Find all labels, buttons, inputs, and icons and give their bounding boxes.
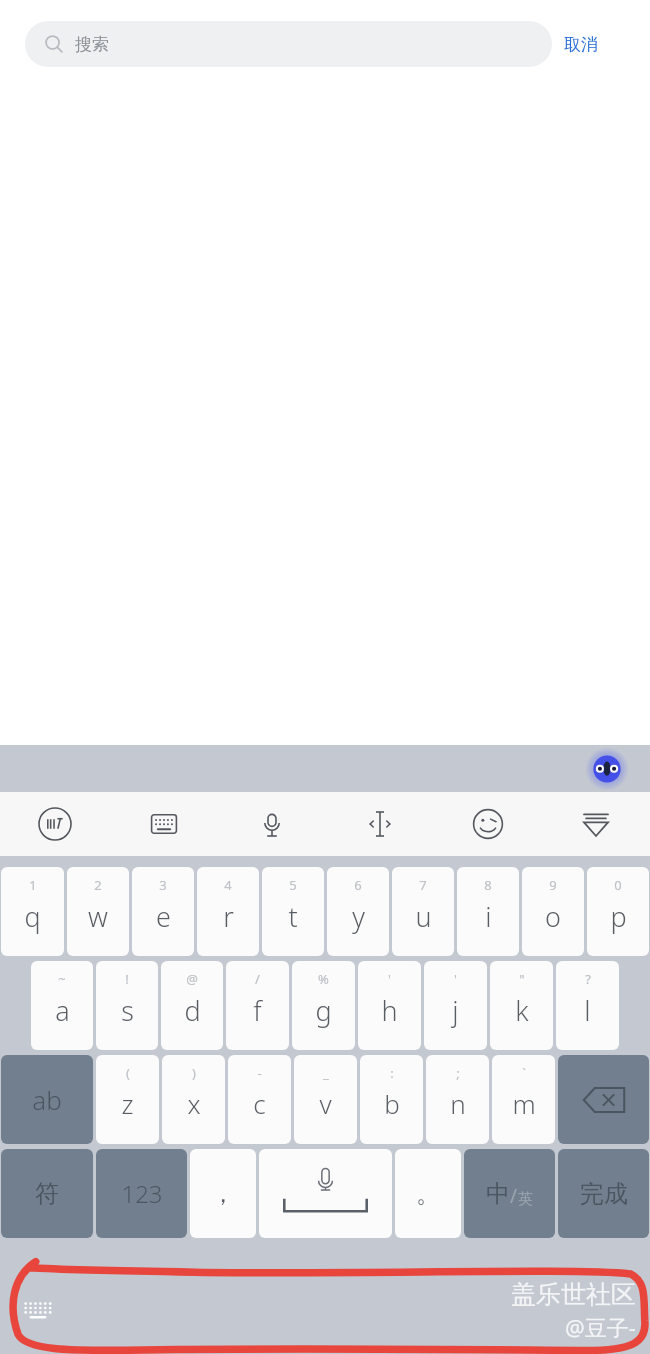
button[interactable]: ? bbox=[556, 961, 619, 1050]
button[interactable]: ' bbox=[424, 961, 487, 1050]
button[interactable]: ' bbox=[358, 961, 421, 1050]
button[interactable]: 6 bbox=[327, 867, 389, 956]
button[interactable]: @ bbox=[161, 961, 223, 1050]
staticText: c bbox=[253, 1086, 266, 1121]
button[interactable]: ab bbox=[1, 1055, 93, 1144]
staticText: ab bbox=[32, 1082, 62, 1117]
staticText: ， bbox=[211, 1179, 235, 1209]
staticText: / bbox=[510, 1183, 518, 1209]
staticText: / bbox=[255, 970, 260, 988]
staticText: 取消 bbox=[564, 34, 598, 55]
staticText: 5 bbox=[289, 876, 297, 894]
button[interactable]: 。 bbox=[395, 1149, 461, 1238]
staticText: " bbox=[519, 970, 525, 988]
staticText: n bbox=[450, 1086, 466, 1121]
button[interactable]: % bbox=[292, 961, 355, 1050]
button[interactable]: ~ bbox=[31, 961, 93, 1050]
staticText: x bbox=[187, 1086, 201, 1121]
button[interactable]: ) bbox=[162, 1055, 225, 1144]
button[interactable]: 0 bbox=[587, 867, 649, 956]
button[interactable]: Input method bbox=[0, 792, 109, 856]
staticText: 符 bbox=[35, 1179, 59, 1209]
button[interactable]: Emoji bbox=[434, 792, 542, 856]
staticText: % bbox=[318, 970, 329, 988]
staticText: 2 bbox=[94, 876, 102, 894]
staticText: - bbox=[257, 1064, 262, 1082]
staticText: y bbox=[352, 898, 365, 935]
button[interactable]: IME assistant bbox=[590, 752, 624, 786]
staticText: ; bbox=[456, 1064, 460, 1082]
staticText: 1 bbox=[29, 876, 37, 894]
staticText: 0 bbox=[614, 876, 622, 894]
button[interactable]: ( bbox=[96, 1055, 159, 1144]
button[interactable]: 1 bbox=[1, 867, 64, 956]
staticText: k bbox=[515, 992, 529, 1029]
staticText: p bbox=[610, 898, 627, 935]
button[interactable]: 搜索 bbox=[25, 21, 552, 67]
button[interactable]: Move cursor bbox=[326, 792, 434, 856]
staticText: e bbox=[156, 898, 171, 935]
staticText: b bbox=[384, 1086, 400, 1121]
button[interactable]: 8 bbox=[457, 867, 519, 956]
staticText: w bbox=[88, 898, 108, 935]
staticText: ? bbox=[585, 970, 591, 988]
button[interactable]: 符 bbox=[1, 1149, 93, 1238]
button[interactable]: 7 bbox=[392, 867, 454, 956]
staticText: u bbox=[415, 898, 432, 935]
button[interactable]: Switch keyboard bbox=[18, 1290, 58, 1330]
button[interactable]: ! bbox=[96, 961, 158, 1050]
button[interactable]: - bbox=[228, 1055, 291, 1144]
button[interactable]: 123 bbox=[96, 1149, 187, 1238]
staticText: 盖乐世社区 bbox=[511, 1279, 636, 1310]
button[interactable]: Space bbox=[259, 1149, 392, 1238]
button[interactable]: 4 bbox=[197, 867, 259, 956]
staticText: ) bbox=[192, 1064, 196, 1082]
button[interactable]: Hide keyboard bbox=[542, 792, 650, 856]
button[interactable]: " bbox=[490, 961, 553, 1050]
button[interactable]: Backspace bbox=[558, 1055, 649, 1144]
button[interactable]: Chinese English toggle bbox=[464, 1149, 555, 1238]
staticText: q bbox=[24, 898, 41, 935]
staticText: ! bbox=[125, 970, 129, 988]
button[interactable]: 5 bbox=[262, 867, 324, 956]
button[interactable]: ; bbox=[426, 1055, 489, 1144]
button[interactable]: _ bbox=[294, 1055, 357, 1144]
staticText: @ bbox=[186, 970, 198, 988]
staticText: ` bbox=[522, 1064, 526, 1082]
staticText: l bbox=[584, 992, 591, 1029]
staticText: m bbox=[512, 1086, 536, 1121]
staticText: v bbox=[319, 1086, 332, 1121]
staticText: : bbox=[390, 1064, 394, 1082]
staticText: 123 bbox=[121, 1177, 163, 1210]
staticText: 9 bbox=[549, 876, 557, 894]
button[interactable]: Keyboard layout bbox=[109, 792, 218, 856]
staticText: g bbox=[315, 992, 332, 1029]
staticText: _ bbox=[323, 1064, 329, 1082]
staticText: f bbox=[253, 992, 262, 1029]
button[interactable]: Voice input bbox=[218, 792, 326, 856]
button[interactable]: : bbox=[360, 1055, 423, 1144]
staticText: ' bbox=[454, 970, 457, 988]
staticText: 搜索 bbox=[75, 34, 109, 55]
staticText: h bbox=[381, 992, 398, 1029]
button[interactable]: 3 bbox=[132, 867, 194, 956]
staticText: @豆子- bbox=[565, 1312, 636, 1342]
staticText: 3 bbox=[159, 876, 167, 894]
staticText: r bbox=[223, 898, 234, 935]
staticText: s bbox=[121, 992, 134, 1029]
button[interactable]: 完成 bbox=[558, 1149, 649, 1238]
button[interactable]: ` bbox=[492, 1055, 555, 1144]
staticText: 6 bbox=[354, 876, 362, 894]
button[interactable]: ， bbox=[190, 1149, 256, 1238]
staticText: d bbox=[184, 992, 201, 1029]
staticText: z bbox=[121, 1086, 134, 1121]
staticText: i bbox=[485, 898, 492, 935]
staticText: a bbox=[55, 992, 70, 1029]
button[interactable]: 取消 bbox=[552, 21, 610, 67]
button[interactable]: 2 bbox=[67, 867, 129, 956]
staticText: 中 bbox=[486, 1179, 510, 1209]
staticText: 8 bbox=[484, 876, 492, 894]
button[interactable]: 9 bbox=[522, 867, 584, 956]
staticText: 英 bbox=[518, 1190, 533, 1209]
button[interactable]: / bbox=[226, 961, 289, 1050]
